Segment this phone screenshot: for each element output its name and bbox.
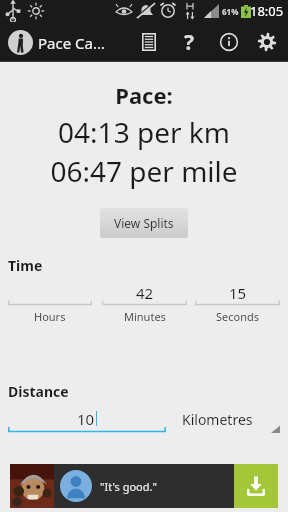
staticText: 61% bbox=[222, 6, 239, 17]
staticText: Distance bbox=[8, 382, 69, 401]
staticText: Hours bbox=[34, 309, 66, 324]
staticText: Minutes bbox=[124, 309, 166, 324]
button[interactable]: Install bbox=[234, 464, 278, 508]
staticText: ? bbox=[184, 28, 195, 57]
staticText: View Splits bbox=[114, 215, 174, 231]
button[interactable]: Settings bbox=[252, 27, 282, 57]
button[interactable]: 15 bbox=[195, 283, 280, 324]
button[interactable]: Advertisement bbox=[10, 464, 278, 508]
button[interactable]: Pace Ca… bbox=[6, 30, 107, 55]
staticText: 42 bbox=[136, 283, 154, 301]
button[interactable]: View Splits bbox=[100, 208, 188, 238]
button[interactable]: Help bbox=[172, 25, 206, 59]
button[interactable]: Info bbox=[214, 27, 244, 57]
staticText: 18:05 bbox=[250, 2, 284, 20]
staticText: 04:13 per km bbox=[0, 113, 288, 151]
staticText: 15 bbox=[229, 283, 247, 301]
staticText: Kilometres bbox=[182, 410, 253, 429]
button[interactable]: 10 bbox=[8, 409, 166, 433]
staticText: Pace Ca… bbox=[38, 33, 105, 53]
staticText: Time bbox=[8, 256, 43, 275]
button[interactable]: Splits list bbox=[134, 27, 164, 57]
staticText: 10 bbox=[77, 409, 95, 428]
staticText: Pace: bbox=[0, 80, 288, 110]
button[interactable]: Hours bbox=[8, 283, 92, 324]
button[interactable]: Kilometres bbox=[180, 410, 280, 433]
staticText: "It's good." bbox=[100, 479, 157, 494]
staticText: Seconds bbox=[216, 309, 260, 324]
button[interactable]: 42 bbox=[102, 283, 187, 324]
staticText: 06:47 per mile bbox=[0, 152, 288, 190]
